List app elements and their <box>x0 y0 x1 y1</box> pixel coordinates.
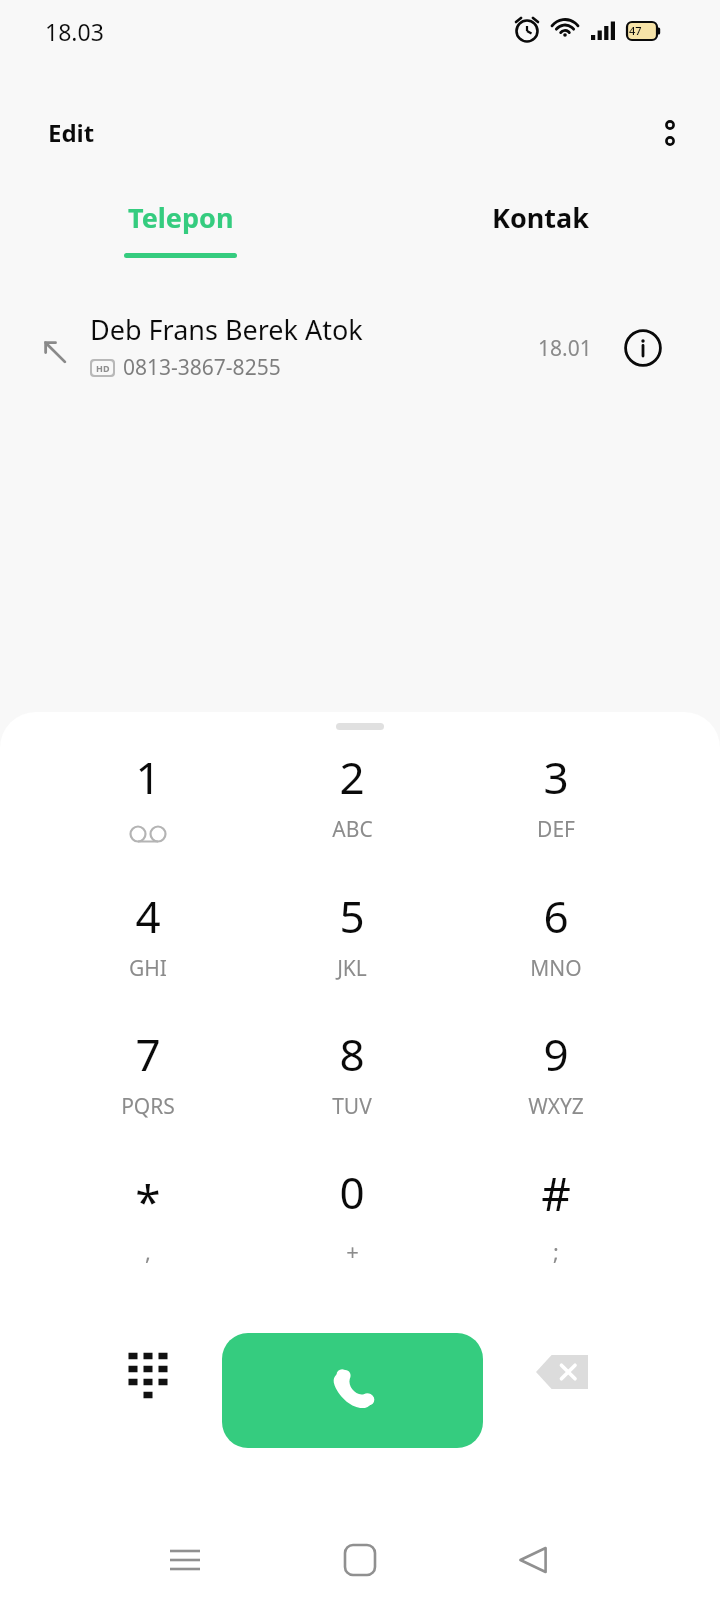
button[interactable]: 6 <box>476 886 636 1004</box>
staticText: 5 <box>339 886 365 946</box>
staticText: MNO <box>530 954 582 983</box>
button[interactable]: 5 <box>272 886 432 1004</box>
staticText: 9 <box>543 1024 569 1084</box>
button[interactable]: Back <box>485 1520 581 1600</box>
staticText: DEF <box>537 815 575 844</box>
staticText: ABC <box>332 815 373 844</box>
button[interactable]: 4 <box>68 886 228 1004</box>
staticText: + <box>346 1236 359 1266</box>
staticText: GHI <box>129 954 167 983</box>
staticText: JKL <box>337 954 367 983</box>
staticText: , <box>145 1236 151 1266</box>
staticText: 2 <box>339 747 365 807</box>
staticText: * <box>135 1170 161 1233</box>
staticText: Edit <box>48 116 95 149</box>
button[interactable]: Call details <box>615 320 671 376</box>
button[interactable]: 2 <box>272 747 432 865</box>
staticText: 7 <box>135 1024 161 1084</box>
staticText: ; <box>553 1236 559 1266</box>
button[interactable]: # <box>476 1162 636 1280</box>
staticText: 4 <box>135 886 161 946</box>
staticText: # <box>541 1162 571 1225</box>
button[interactable]: 9 <box>476 1024 636 1142</box>
staticText: WXYZ <box>528 1092 584 1121</box>
staticText: 18.03 <box>45 16 104 47</box>
button[interactable]: * <box>68 1162 228 1280</box>
button[interactable]: 3 <box>476 747 636 865</box>
staticText: 47 <box>629 23 642 38</box>
button[interactable]: Deb Frans Berek Atok <box>0 300 720 392</box>
button[interactable]: 0 <box>272 1162 432 1280</box>
staticText: HD <box>96 362 110 374</box>
staticText: PQRS <box>121 1092 175 1121</box>
staticText: Deb Frans Berek Atok <box>90 311 363 348</box>
staticText: 18.01 <box>538 334 592 363</box>
staticText: 3 <box>543 747 569 807</box>
button[interactable]: 8 <box>272 1024 432 1142</box>
staticText: Kontak <box>492 199 589 236</box>
button[interactable]: Edit <box>30 106 113 159</box>
button[interactable]: Telepon <box>0 185 360 280</box>
button[interactable]: More options <box>646 109 694 157</box>
staticText: Telepon <box>128 199 234 236</box>
button[interactable]: Recent apps <box>137 1520 233 1600</box>
staticText: 8 <box>339 1024 365 1084</box>
staticText: 0813-3867-8255 <box>123 353 281 382</box>
button[interactable]: Delete <box>510 1320 614 1424</box>
button[interactable]: Call <box>222 1333 483 1448</box>
button[interactable]: 1 <box>68 747 228 865</box>
button[interactable]: Kontak <box>360 185 720 280</box>
staticText: 0 <box>339 1162 365 1222</box>
staticText: 6 <box>543 886 569 946</box>
button[interactable]: Hide keypad <box>100 1320 196 1424</box>
button[interactable]: Home <box>312 1520 408 1600</box>
staticText: 1 <box>135 747 161 807</box>
button[interactable]: 7 <box>68 1024 228 1142</box>
staticText: TUV <box>332 1092 372 1121</box>
